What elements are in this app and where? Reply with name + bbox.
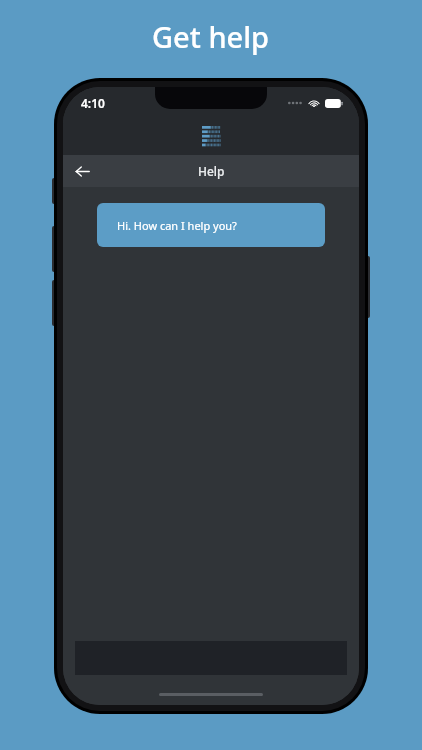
button[interactable]: Hi. How can I help you? — [97, 203, 325, 247]
staticText: Get help — [152, 17, 270, 56]
staticText: Hi. How can I help you? — [117, 218, 237, 233]
staticText: 4:10 — [81, 95, 105, 111]
button[interactable]: Back — [63, 155, 101, 187]
staticText: Help — [198, 163, 225, 179]
